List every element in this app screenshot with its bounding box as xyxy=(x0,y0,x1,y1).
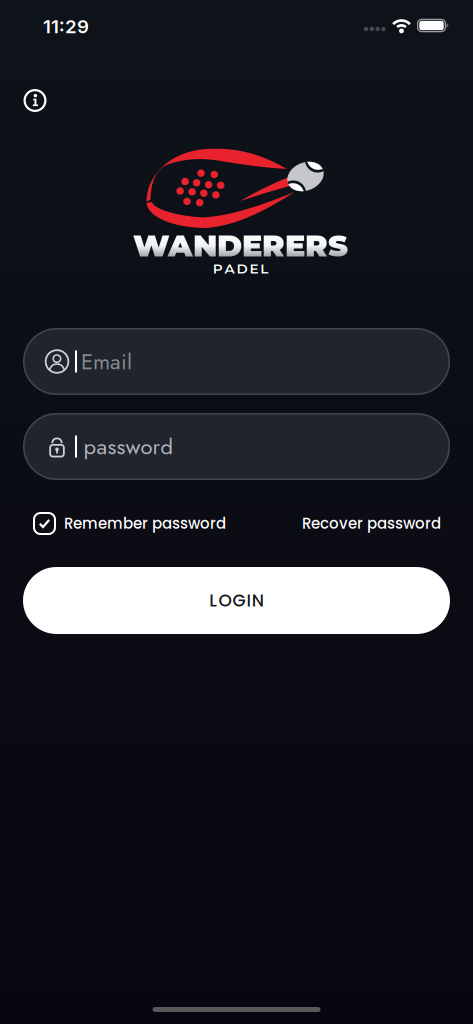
button[interactable]: Recover password xyxy=(302,513,441,534)
staticText: Recover password xyxy=(302,513,441,534)
button[interactable]: LOGIN xyxy=(23,567,450,634)
staticText: LOGIN xyxy=(209,589,264,612)
staticText: P xyxy=(213,260,223,277)
button[interactable]: password xyxy=(23,413,450,480)
staticText: A xyxy=(225,260,235,277)
staticText: Remember password xyxy=(64,513,226,534)
staticText: D xyxy=(236,260,247,277)
staticText: 11:29 xyxy=(43,15,89,38)
staticText: E xyxy=(249,260,258,277)
staticText: password xyxy=(83,431,173,462)
staticText: L xyxy=(260,260,268,277)
staticText: Email xyxy=(81,346,132,377)
button[interactable] xyxy=(23,89,46,112)
button[interactable]: Email xyxy=(23,328,450,395)
button[interactable]: Remember password xyxy=(33,512,226,535)
